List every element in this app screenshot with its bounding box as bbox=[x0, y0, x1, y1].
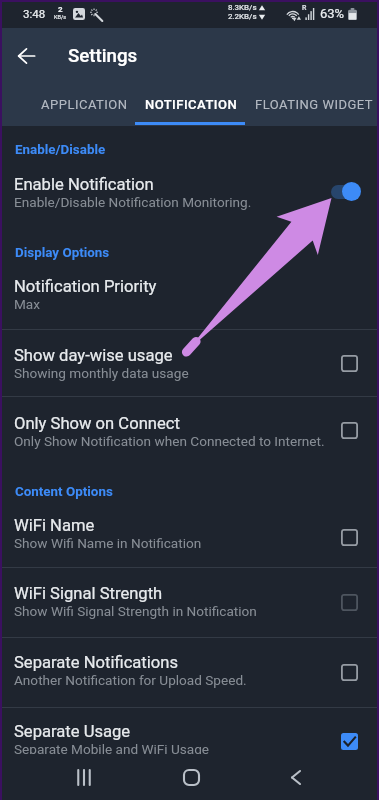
staticText: Settings bbox=[68, 45, 138, 67]
button[interactable]: Show day-wise usage bbox=[0, 330, 379, 396]
button[interactable]: Back bbox=[9, 38, 44, 73]
staticText: 63% bbox=[320, 6, 345, 21]
button[interactable]: FLOATING WIDGET bbox=[255, 84, 374, 125]
staticText: Only Show on Connect bbox=[14, 414, 180, 433]
staticText: Enable/Disable bbox=[15, 142, 106, 158]
staticText: WiFi Name bbox=[14, 516, 95, 535]
staticText: Separate Usage bbox=[14, 722, 131, 741]
button[interactable]: NOTIFICATION bbox=[145, 84, 238, 125]
staticText: Display Options bbox=[15, 245, 110, 261]
button[interactable]: Recent apps bbox=[61, 754, 107, 800]
staticText: Max bbox=[14, 296, 41, 312]
staticText: Show Wifi Signal Strength in Notificatio… bbox=[14, 603, 257, 619]
button[interactable]: Separate Notifications bbox=[0, 638, 379, 707]
button[interactable]: APPLICATION bbox=[41, 84, 128, 125]
staticText: Show Wifi Name in Notification bbox=[14, 535, 202, 551]
staticText: Separate Notifications bbox=[14, 653, 178, 672]
button[interactable]: Notification Priority bbox=[0, 268, 379, 329]
staticText: 2.2KB/s bbox=[228, 12, 257, 21]
button[interactable]: Home bbox=[168, 754, 214, 800]
staticText: Show day-wise usage bbox=[14, 346, 173, 365]
staticText: 3:48 bbox=[23, 7, 46, 20]
staticText: WiFi Signal Strength bbox=[14, 584, 163, 603]
staticText: 8.3KB/s bbox=[228, 3, 257, 12]
button[interactable]: WiFi Signal Strength bbox=[0, 568, 379, 637]
button[interactable]: Back bbox=[273, 754, 319, 800]
staticText: 2 bbox=[58, 5, 63, 14]
staticText: NOTIFICATION bbox=[145, 97, 238, 112]
staticText: R bbox=[302, 4, 307, 12]
button[interactable]: Enable Notification bbox=[0, 170, 379, 218]
staticText: Notification Priority bbox=[14, 277, 157, 296]
staticText: FLOATING WIDGET bbox=[255, 97, 374, 112]
staticText: APPLICATION bbox=[41, 97, 128, 112]
staticText: Enable Notification bbox=[14, 175, 154, 194]
button[interactable]: Only Show on Connect bbox=[0, 397, 379, 463]
staticText: Another Notification for Upload Speed. bbox=[14, 672, 247, 688]
staticText: Enable/Disable Notification Monitoring. bbox=[14, 194, 252, 210]
staticText: Separate Mobile and WiFi Usage bbox=[14, 741, 210, 757]
button[interactable]: WiFi Name bbox=[0, 508, 379, 567]
staticText: Content Options bbox=[15, 484, 113, 500]
button[interactable]: Separate Usage bbox=[0, 708, 379, 774]
staticText: Showing monthly data usage bbox=[14, 365, 189, 381]
staticText: Only Show Notification when Connected to… bbox=[14, 433, 325, 449]
staticText: KB/s bbox=[54, 14, 66, 20]
